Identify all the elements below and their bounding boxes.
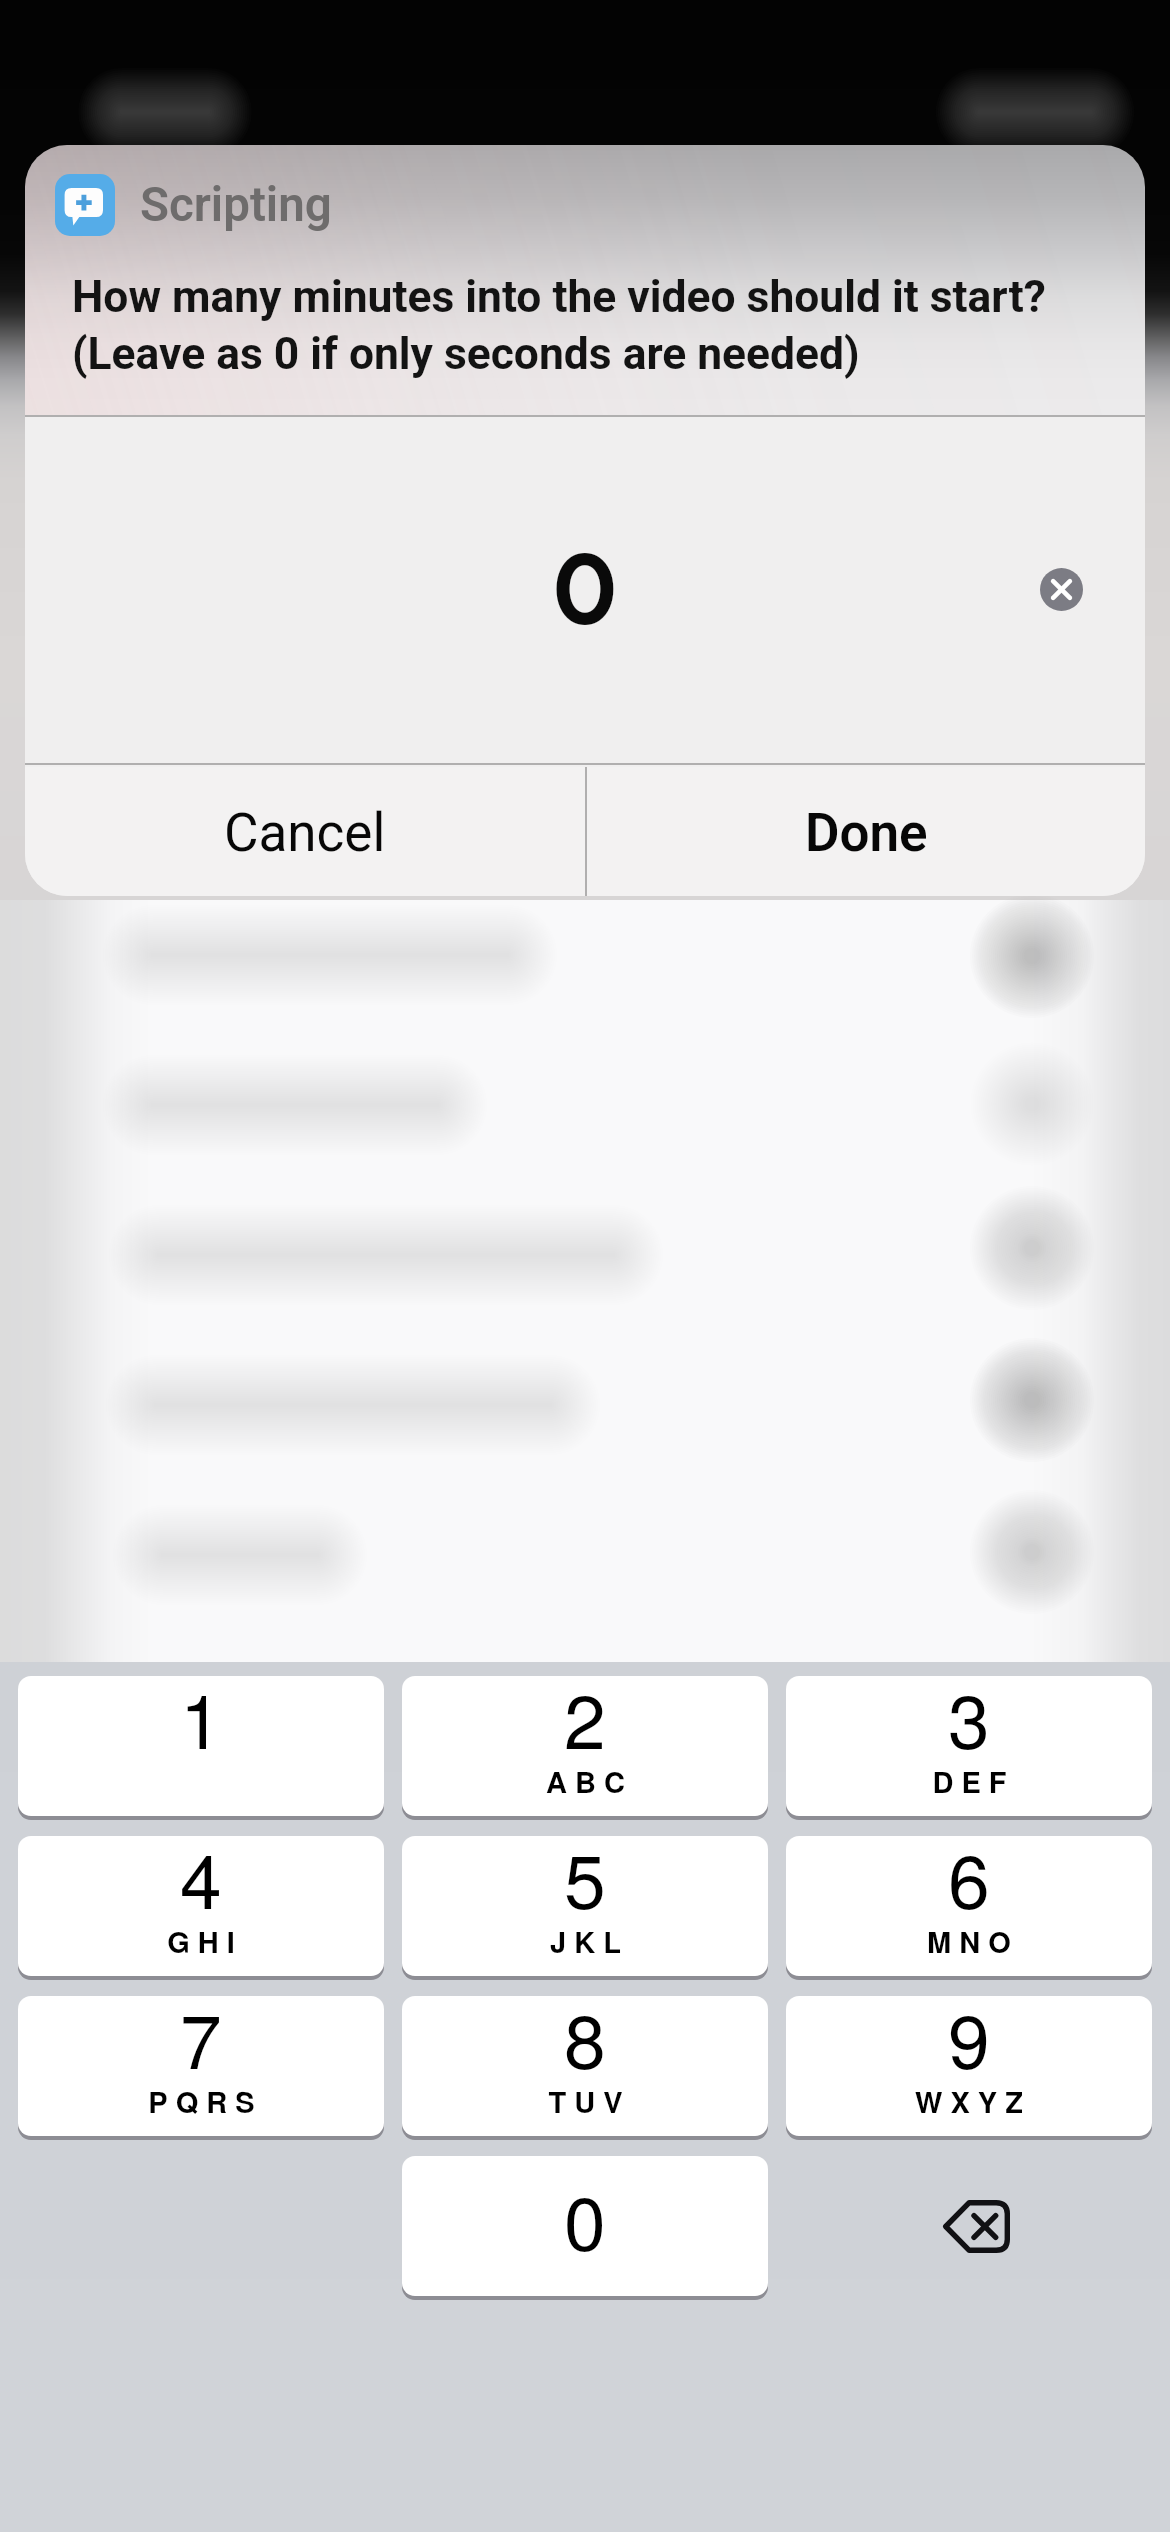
button[interactable]: Done (587, 767, 1145, 896)
staticText: J K L (550, 1920, 621, 1962)
staticText: M N O (927, 1920, 1011, 1962)
button[interactable]: 8 (402, 1996, 768, 2136)
staticText: 5 (564, 1836, 606, 1930)
staticText: 8 (564, 1996, 606, 2090)
staticText: D E F (932, 1760, 1007, 1802)
staticText: 7 (180, 1996, 222, 2090)
button[interactable]: 7 (18, 1996, 384, 2136)
button[interactable]: Backspace (786, 2156, 1152, 2296)
button[interactable]: 0 (402, 2156, 768, 2296)
staticText: 4 (180, 1836, 222, 1930)
staticText: A B C (546, 1760, 625, 1802)
staticText: How many minutes into the video should i… (72, 267, 1132, 381)
button[interactable]: 1 (18, 1676, 384, 1816)
button[interactable]: 6 (786, 1836, 1152, 1976)
staticText: 6 (948, 1836, 990, 1930)
staticText: 1 (180, 1676, 222, 1770)
staticText: 2 (564, 1676, 606, 1770)
button[interactable]: 9 (786, 1996, 1152, 2136)
staticText: 0 (564, 2165, 606, 2272)
staticText: P Q R S (148, 2080, 255, 2122)
staticText: 0 (553, 530, 617, 648)
button[interactable]: 3 (786, 1676, 1152, 1816)
staticText: Done (805, 802, 928, 864)
staticText: T U V (548, 2080, 623, 2122)
staticText: W X Y Z (915, 2080, 1023, 2122)
button[interactable]: 4 (18, 1836, 384, 1976)
button[interactable]: Clear (1040, 568, 1083, 611)
staticText: Scripting (140, 177, 332, 233)
button[interactable]: Cancel (25, 767, 585, 896)
button[interactable]: 2 (402, 1676, 768, 1816)
staticText: 9 (948, 1996, 990, 2090)
staticText: Cancel (224, 802, 386, 864)
staticText: G H I (167, 1920, 235, 1962)
button[interactable]: 5 (402, 1836, 768, 1976)
staticText: 3 (948, 1676, 990, 1770)
